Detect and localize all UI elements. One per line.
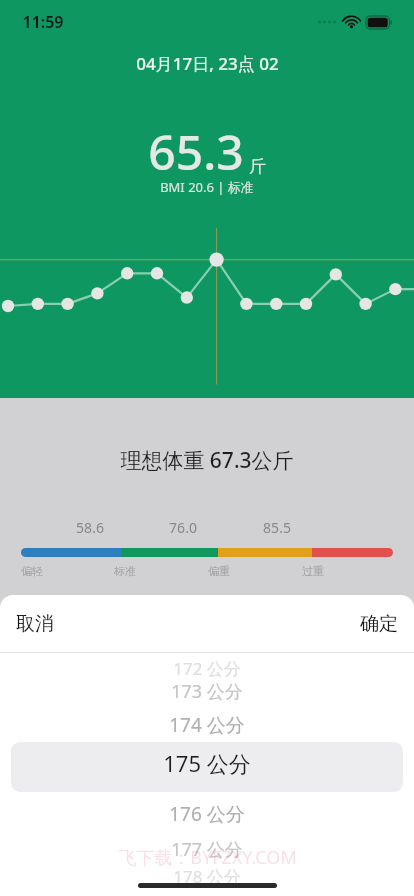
staticText: 飞下载：BYFZXY.COM [118,845,297,870]
button[interactable]: 175 公分 [0,748,414,778]
button[interactable]: 176 公分 [0,801,414,827]
staticText: 65.3 [148,119,244,184]
staticText: 取消 [16,612,54,636]
staticText: 76.0 [169,518,197,537]
staticText: 理想体重 67.3公斤 [120,446,294,475]
button[interactable]: 177 公分 [0,837,414,862]
button[interactable]: 174 公分 [0,712,414,738]
button[interactable]: 确定 [344,604,414,644]
staticText: 04月17日, 23点 02 [136,52,279,75]
staticText: 172 公分 [173,657,241,680]
staticText: 58.6 [76,518,104,537]
staticText: 偏重 [208,564,230,578]
staticText: BMI 20.6 | 标准 [160,178,254,196]
staticText: 177 公分 [171,837,243,862]
staticText: 偏轻 [21,564,43,578]
button[interactable]: 178 公分 [0,865,414,888]
staticText: 178 公分 [173,865,241,888]
staticText: 174 公分 [169,712,245,738]
staticText: 斤 [249,156,266,177]
staticText: 确定 [360,612,398,636]
staticText: 11:59 [22,11,64,33]
staticText: 175 公分 [163,748,251,778]
button[interactable]: 172 公分 [0,657,414,680]
button[interactable]: 取消 [0,604,70,644]
staticText: 176 公分 [169,801,245,827]
staticText: 过重 [302,564,324,578]
staticText: 标准 [114,564,136,578]
staticText: 85.5 [263,518,291,537]
staticText: 173 公分 [171,679,243,704]
button[interactable]: 173 公分 [0,679,414,704]
